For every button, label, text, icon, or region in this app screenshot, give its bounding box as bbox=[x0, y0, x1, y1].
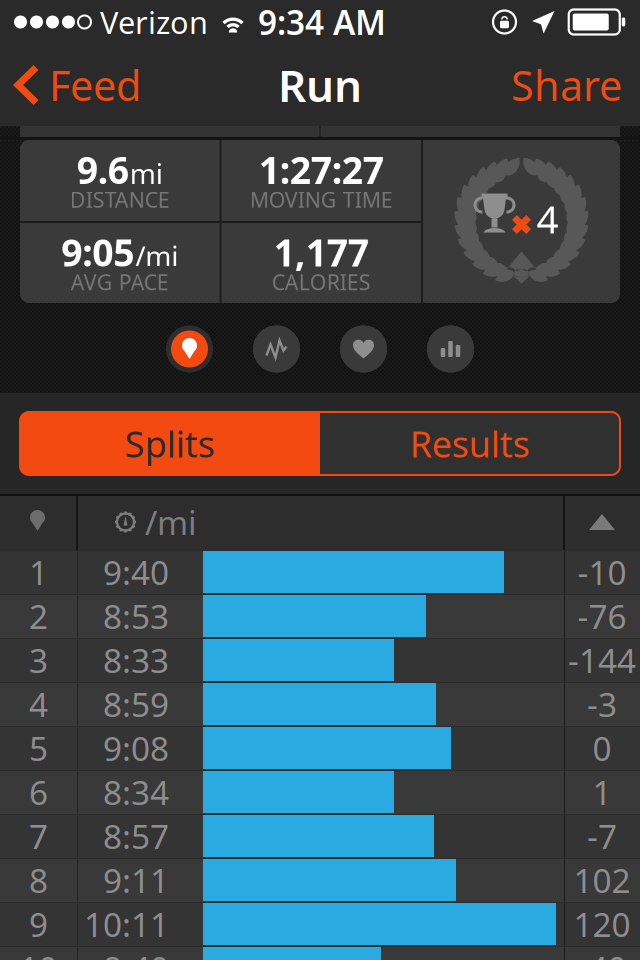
button[interactable]: Charts bbox=[422, 321, 478, 377]
staticText: 3 bbox=[29, 638, 48, 682]
button[interactable]: Map bbox=[161, 321, 217, 377]
staticText: Run bbox=[278, 56, 362, 114]
staticText: 4 bbox=[29, 682, 48, 726]
staticText: 102 bbox=[573, 858, 630, 902]
staticText: 9:05 bbox=[61, 227, 134, 277]
button[interactable]: Results bbox=[320, 412, 620, 475]
staticText: 9:08 bbox=[103, 726, 169, 770]
button[interactable]: Analysis bbox=[248, 321, 304, 377]
staticText: 8 bbox=[29, 858, 48, 902]
staticText: 9:11 bbox=[103, 858, 169, 902]
staticText: 7 bbox=[29, 814, 48, 858]
staticText: 8:34 bbox=[103, 770, 169, 814]
button[interactable]: Feed bbox=[0, 49, 157, 121]
staticText: Splits bbox=[125, 420, 215, 467]
staticText: 4 bbox=[536, 193, 558, 244]
staticText: 9:34 AM bbox=[258, 0, 386, 44]
staticText: /mi bbox=[135, 237, 178, 274]
staticText: 9 bbox=[29, 902, 48, 946]
staticText: 0 bbox=[592, 726, 611, 770]
staticText: mi bbox=[130, 154, 163, 192]
staticText: -76 bbox=[577, 594, 626, 638]
staticText: DISTANCE bbox=[70, 185, 170, 214]
staticText: 2 bbox=[29, 594, 48, 638]
staticText: 1:27:27 bbox=[259, 145, 384, 194]
staticText: Verizon bbox=[100, 2, 208, 42]
staticText: 8:40 bbox=[103, 946, 169, 960]
staticText: -10 bbox=[577, 550, 626, 594]
staticText: -3 bbox=[587, 682, 617, 726]
staticText: 8:59 bbox=[103, 682, 169, 726]
staticText: 1,177 bbox=[274, 227, 369, 277]
staticText: 10:11 bbox=[84, 902, 169, 946]
staticText: 9.6 bbox=[77, 145, 129, 194]
staticText: 8:57 bbox=[103, 814, 169, 858]
staticText: AVG PACE bbox=[71, 268, 169, 296]
staticText: 1 bbox=[592, 770, 611, 814]
staticText: 1 bbox=[29, 550, 48, 594]
staticText: CALORIES bbox=[272, 268, 371, 296]
staticText: Results bbox=[410, 420, 530, 467]
button[interactable]: Splits bbox=[20, 412, 320, 475]
button[interactable]: Share bbox=[493, 47, 640, 123]
staticText: 10 bbox=[19, 946, 57, 960]
staticText: /mi bbox=[145, 500, 197, 544]
staticText: -144 bbox=[568, 638, 636, 682]
staticText: Share bbox=[511, 58, 622, 112]
staticText: 9:40 bbox=[103, 550, 169, 594]
staticText: 5 bbox=[29, 726, 48, 770]
staticText: -7 bbox=[587, 814, 617, 858]
staticText: 6 bbox=[29, 770, 48, 814]
staticText: -40 bbox=[577, 946, 626, 960]
button[interactable]: Heart rate bbox=[335, 321, 391, 377]
staticText: 120 bbox=[573, 902, 630, 946]
staticText: MOVING TIME bbox=[250, 185, 393, 214]
staticText: 8:33 bbox=[103, 638, 169, 682]
staticText: Feed bbox=[49, 58, 141, 112]
staticText: 8:53 bbox=[103, 594, 169, 638]
